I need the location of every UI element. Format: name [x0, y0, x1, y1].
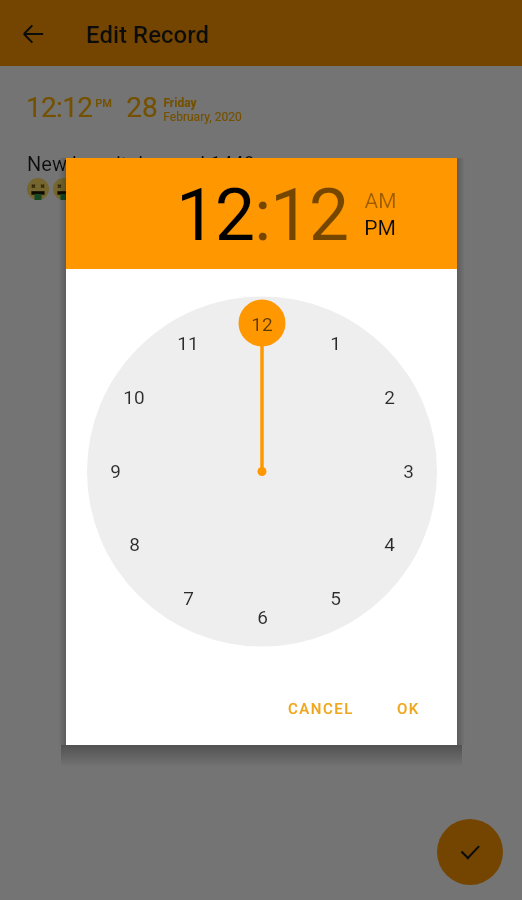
button[interactable]: 12	[270, 173, 348, 257]
button[interactable]: Back	[11, 11, 57, 57]
button[interactable]: 3	[386, 455, 430, 487]
staticText: 6	[257, 606, 268, 628]
button[interactable]: PM	[364, 216, 396, 241]
button[interactable]: 10	[112, 381, 156, 413]
button[interactable]: OK	[385, 690, 432, 728]
staticText: 7	[183, 587, 194, 609]
button[interactable]: 7	[166, 582, 210, 614]
staticText: 2	[384, 386, 395, 408]
button[interactable]: 11	[166, 327, 210, 359]
button[interactable]: 4	[367, 528, 411, 560]
button[interactable]: 2	[367, 381, 411, 413]
button[interactable]: 12	[240, 308, 284, 340]
staticText: Edit Record	[86, 21, 209, 49]
button[interactable]: CANCEL	[276, 690, 366, 728]
staticText: New hospital record 1449	[27, 152, 255, 175]
button[interactable]: AM	[364, 189, 397, 214]
staticText: 12:12	[26, 91, 93, 124]
button[interactable]: Save record	[437, 819, 503, 885]
button[interactable]: 9	[93, 455, 137, 487]
button[interactable]: 8	[112, 528, 156, 560]
staticText: 10	[123, 386, 145, 408]
staticText: 3	[403, 460, 414, 482]
staticText: 4	[384, 533, 395, 555]
staticText: 5	[330, 587, 341, 609]
staticText: OK	[397, 700, 420, 718]
staticText: PM	[364, 216, 396, 241]
staticText: CANCEL	[288, 700, 354, 718]
button[interactable]: 12	[176, 173, 254, 257]
staticText: 9	[110, 460, 121, 482]
staticText: February, 2020	[163, 110, 242, 124]
staticText: 8	[129, 533, 140, 555]
staticText: 1	[330, 332, 341, 354]
staticText: 12	[270, 173, 348, 257]
staticText: 28	[126, 91, 158, 124]
staticText: 12	[176, 173, 254, 257]
staticText: :	[254, 173, 270, 257]
button[interactable]: 1	[313, 327, 357, 359]
staticText: PM	[95, 97, 112, 110]
staticText: AM	[364, 189, 397, 214]
button[interactable]: 6	[240, 601, 284, 633]
staticText: Friday	[163, 96, 197, 110]
button[interactable]: 5	[313, 582, 357, 614]
staticText: 11	[177, 332, 199, 354]
staticText: 12	[251, 313, 273, 335]
